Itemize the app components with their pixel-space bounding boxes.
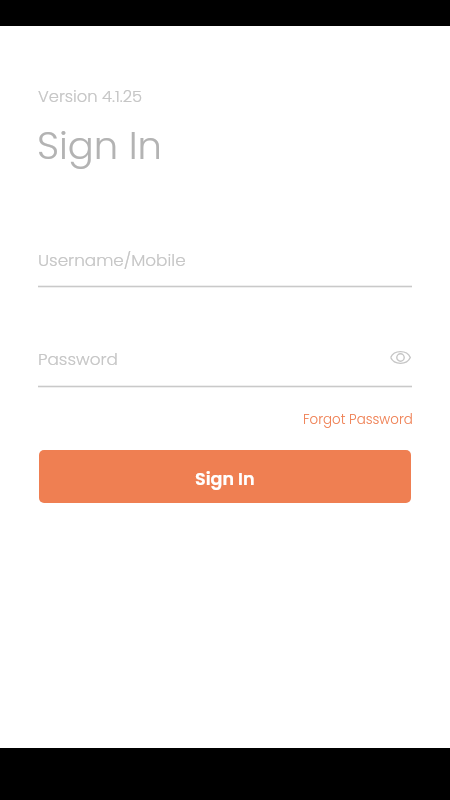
staticText: Password xyxy=(38,347,118,371)
button[interactable]: Show password xyxy=(387,344,414,371)
staticText: Version 4.1.25 xyxy=(38,85,143,108)
staticText: Sign In xyxy=(37,119,162,173)
button[interactable]: Sign In xyxy=(39,450,411,503)
button[interactable]: Forgot Password xyxy=(303,410,413,429)
button[interactable] xyxy=(38,240,412,288)
staticText: Username/Mobile xyxy=(38,248,186,272)
staticText: Sign In xyxy=(195,467,255,492)
button[interactable] xyxy=(38,339,372,387)
